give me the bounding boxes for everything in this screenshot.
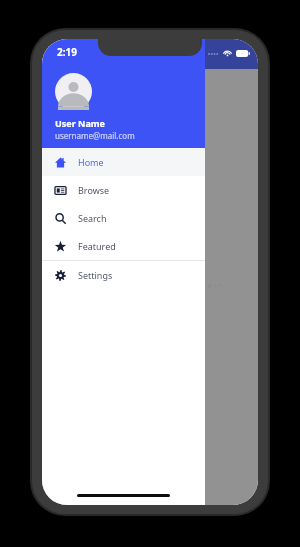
other: Signal	[208, 52, 219, 56]
staticText: Settings	[78, 269, 113, 281]
staticText: Search	[78, 212, 107, 224]
staticText: Featured	[78, 240, 116, 252]
button[interactable]: Search	[42, 204, 205, 232]
staticText: Home	[78, 156, 104, 168]
staticText: User Name	[55, 117, 105, 129]
staticText: Browse	[78, 184, 110, 196]
button[interactable]: Settings	[42, 261, 205, 289]
button[interactable]: Home	[42, 148, 205, 176]
button[interactable]: Browse	[42, 176, 205, 204]
staticText: username@mail.com	[55, 130, 135, 141]
staticText: 2:19	[57, 45, 77, 59]
other: Battery	[236, 50, 250, 57]
button[interactable]: Featured	[42, 232, 205, 260]
other: Wi-Fi	[223, 50, 232, 57]
